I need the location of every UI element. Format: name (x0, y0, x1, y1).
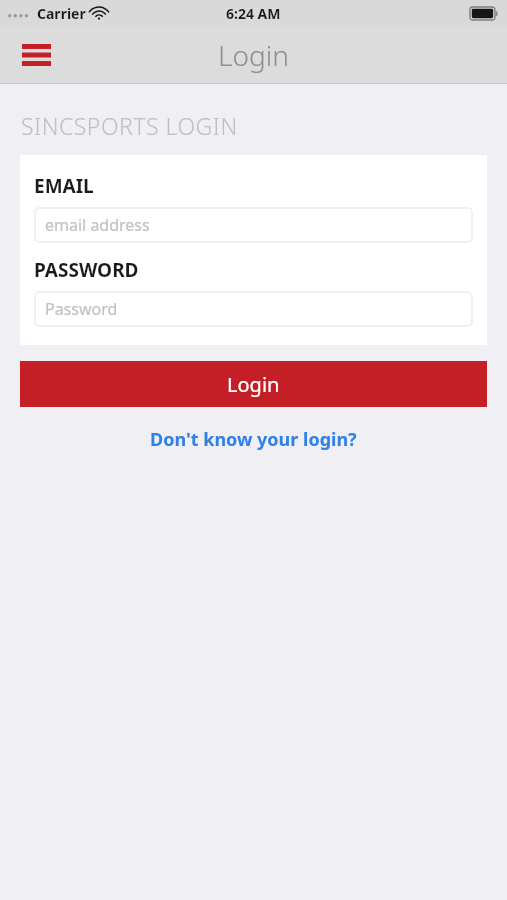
button[interactable]: email address (34, 207, 473, 243)
staticText: Password (45, 298, 118, 320)
staticText: EMAIL (34, 173, 94, 199)
button[interactable]: Open navigation menu (14, 33, 58, 77)
staticText: email address (45, 214, 150, 236)
button[interactable]: Login (20, 361, 487, 407)
staticText: PASSWORD (34, 257, 139, 283)
staticText: Login (218, 36, 289, 74)
button[interactable]: Don't know your login? (138, 423, 369, 456)
staticText: 6:24 AM (226, 4, 281, 23)
staticText: Carrier (37, 4, 86, 23)
staticText: Login (227, 371, 280, 398)
staticText: SINCSPORTS LOGIN (21, 110, 238, 141)
staticText: Don't know your login? (150, 427, 357, 452)
button[interactable]: Password (34, 291, 473, 327)
